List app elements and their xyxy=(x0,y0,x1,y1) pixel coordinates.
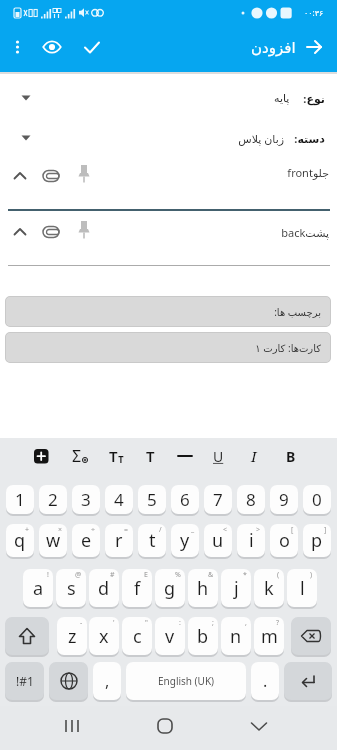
staticText: g xyxy=(164,576,176,601)
staticText: کارت‌ها: کارت ۱ xyxy=(255,341,321,355)
staticText: English (UK) xyxy=(158,674,215,688)
button[interactable]: z xyxy=(57,617,87,655)
staticText: ) xyxy=(310,570,313,580)
button[interactable]: u xyxy=(204,524,232,557)
staticText: برچسب ها: xyxy=(274,305,321,319)
button[interactable] xyxy=(242,710,276,744)
staticText: # xyxy=(110,570,115,580)
button[interactable]: f xyxy=(122,569,152,607)
button[interactable]: k xyxy=(254,569,284,607)
button[interactable]: 0 xyxy=(303,485,331,514)
staticText: y xyxy=(180,528,190,553)
button[interactable]: g xyxy=(155,569,185,607)
staticText: ; xyxy=(212,618,214,628)
button[interactable]: B xyxy=(279,444,303,468)
button[interactable] xyxy=(5,617,49,655)
staticText: افزودن xyxy=(251,39,296,56)
staticText: c xyxy=(133,624,142,649)
button[interactable]: e xyxy=(72,524,100,557)
button[interactable]: l xyxy=(287,569,317,607)
button[interactable]: U xyxy=(206,444,230,468)
button[interactable]: Σ xyxy=(65,444,89,468)
button[interactable] xyxy=(148,710,182,744)
staticText: @ xyxy=(75,570,82,580)
button[interactable] xyxy=(76,163,92,187)
button[interactable] xyxy=(38,33,66,61)
button[interactable]: m xyxy=(254,617,284,655)
staticText: 7 xyxy=(213,488,223,511)
button[interactable]: 5 xyxy=(138,485,166,514)
staticText: f xyxy=(134,576,141,601)
staticText: Σ xyxy=(72,445,82,467)
button[interactable]: h xyxy=(188,569,218,607)
button[interactable] xyxy=(8,166,32,186)
button[interactable]: y xyxy=(171,524,199,557)
button[interactable]: t xyxy=(138,524,166,557)
button[interactable]: T xyxy=(103,444,129,468)
button[interactable]: پایه xyxy=(0,87,337,109)
staticText: > xyxy=(256,525,261,535)
button[interactable]: 4 xyxy=(105,485,133,514)
button[interactable] xyxy=(4,33,30,61)
button[interactable] xyxy=(76,219,92,243)
staticText: T xyxy=(146,446,155,466)
button[interactable]: 7 xyxy=(204,485,232,514)
button[interactable]: زبان پلاس xyxy=(0,127,337,149)
staticText: 5 xyxy=(147,488,157,511)
button[interactable]: , xyxy=(93,662,121,700)
button[interactable]: d xyxy=(89,569,119,607)
button[interactable]: j xyxy=(221,569,251,607)
button[interactable]: T xyxy=(138,444,162,468)
staticText: k xyxy=(264,576,274,601)
button[interactable] xyxy=(291,617,331,655)
button[interactable]: r xyxy=(105,524,133,557)
button[interactable] xyxy=(29,444,53,468)
staticText: z xyxy=(68,624,77,649)
button[interactable]: English (UK) xyxy=(126,662,246,700)
button[interactable]: n xyxy=(221,617,251,655)
button[interactable]: 2 xyxy=(39,485,67,514)
button[interactable]: w xyxy=(39,524,67,557)
button[interactable] xyxy=(284,662,332,700)
button[interactable] xyxy=(49,662,88,700)
staticText: !#1 xyxy=(16,673,34,689)
button[interactable]: i xyxy=(237,524,265,557)
button[interactable] xyxy=(8,222,32,242)
staticText: ( xyxy=(277,570,280,580)
button[interactable]: b xyxy=(188,617,218,655)
button[interactable]: q xyxy=(6,524,34,557)
button[interactable]: p xyxy=(303,524,331,557)
button[interactable]: I xyxy=(242,444,266,468)
button[interactable] xyxy=(78,33,106,61)
button[interactable]: v xyxy=(155,617,185,655)
button[interactable]: x xyxy=(89,617,119,655)
staticText: _ xyxy=(191,525,195,535)
button[interactable]: 3 xyxy=(72,485,100,514)
staticText: - xyxy=(80,618,83,628)
button[interactable]: 1 xyxy=(6,485,34,514)
button[interactable] xyxy=(40,166,62,186)
staticText: t xyxy=(149,528,156,553)
staticText: w xyxy=(46,528,61,553)
button[interactable]: s xyxy=(56,569,86,607)
button[interactable]: a xyxy=(23,569,53,607)
button[interactable]: برچسب ها: xyxy=(5,296,331,327)
button[interactable] xyxy=(300,33,332,61)
staticText: E xyxy=(144,570,148,580)
button[interactable]: !#1 xyxy=(5,662,44,700)
staticText: ? xyxy=(276,618,280,628)
button[interactable] xyxy=(55,710,89,744)
staticText: دسته: xyxy=(294,131,325,146)
staticText: 4 xyxy=(114,488,124,511)
staticText: m xyxy=(261,624,278,649)
button[interactable]: 6 xyxy=(171,485,199,514)
staticText: نوع: xyxy=(303,91,325,106)
staticText: h xyxy=(197,576,209,601)
button[interactable]: c xyxy=(122,617,152,655)
button[interactable]: o xyxy=(270,524,298,557)
button[interactable]: 8 xyxy=(237,485,265,514)
button[interactable]: . xyxy=(251,662,279,700)
button[interactable]: کارت‌ها: کارت ۱ xyxy=(5,332,331,363)
button[interactable] xyxy=(40,222,62,242)
button[interactable]: 9 xyxy=(270,485,298,514)
